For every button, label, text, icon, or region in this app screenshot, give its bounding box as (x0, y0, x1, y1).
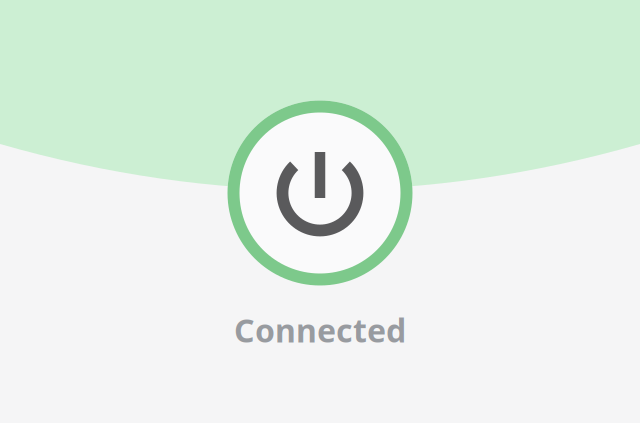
staticText: Connected (234, 309, 406, 351)
button[interactable]: Disconnect (227, 100, 412, 285)
